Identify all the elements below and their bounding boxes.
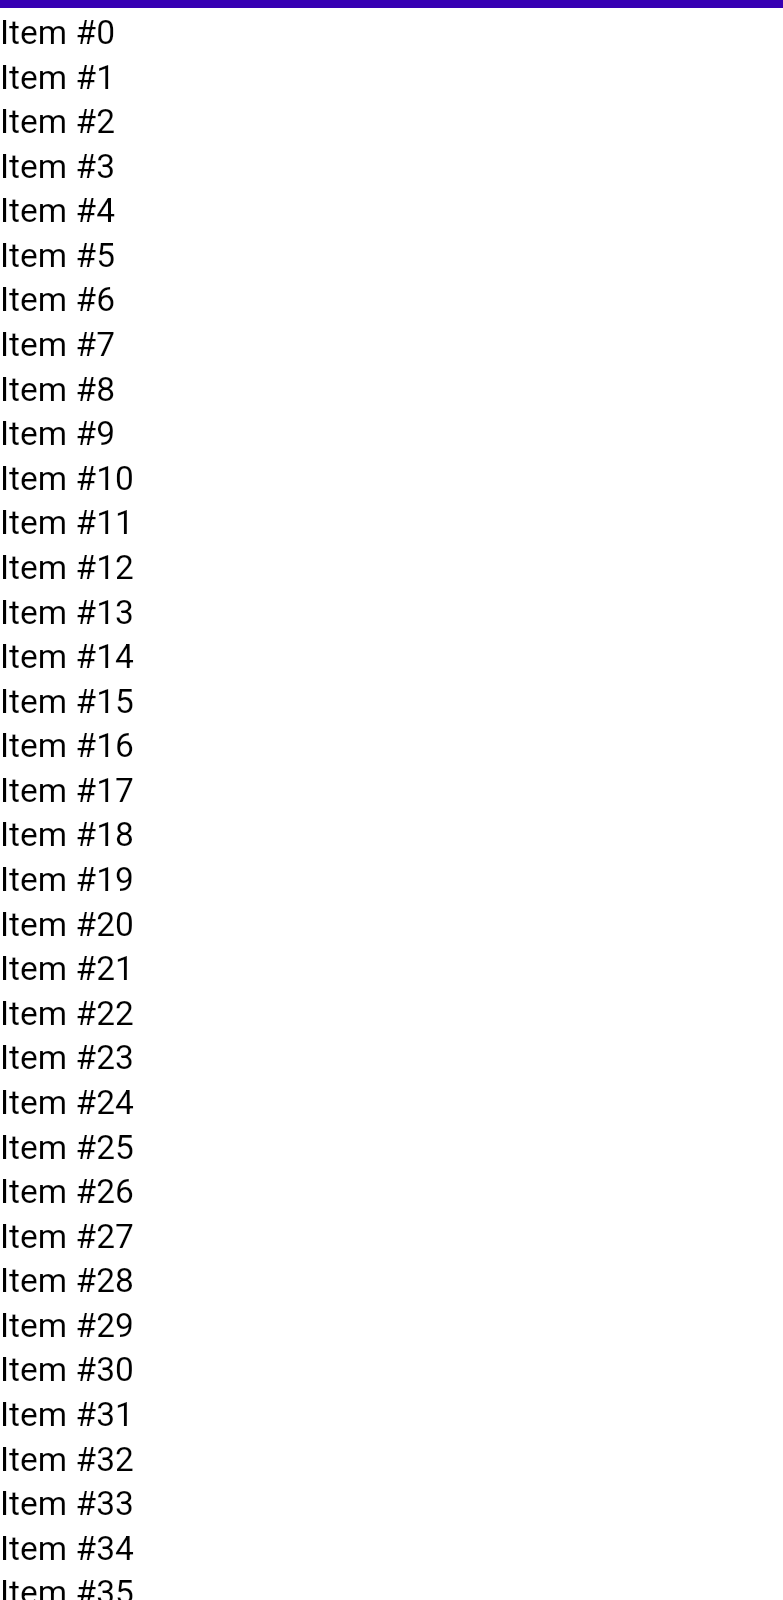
- staticText: Item #35: [0, 1573, 134, 1600]
- button[interactable]: Item #5: [0, 236, 783, 280]
- button[interactable]: Item #23: [0, 1038, 783, 1082]
- staticText: Item #9: [0, 414, 115, 453]
- button[interactable]: Item #21: [0, 949, 783, 993]
- button[interactable]: Item #6: [0, 280, 783, 324]
- staticText: Item #21: [0, 949, 134, 988]
- staticText: Item #4: [0, 191, 115, 230]
- button[interactable]: Item #11: [0, 503, 783, 547]
- button[interactable]: Item #35: [0, 1573, 783, 1600]
- button[interactable]: Item #24: [0, 1083, 783, 1127]
- staticText: Item #12: [0, 548, 134, 587]
- staticText: Item #19: [0, 860, 134, 899]
- staticText: Item #34: [0, 1529, 134, 1568]
- button[interactable]: Item #33: [0, 1484, 783, 1528]
- button[interactable]: Item #2: [0, 102, 783, 146]
- staticText: Item #33: [0, 1484, 134, 1523]
- staticText: Item #25: [0, 1128, 134, 1167]
- staticText: Item #23: [0, 1038, 134, 1077]
- staticText: Item #17: [0, 771, 134, 810]
- staticText: Item #22: [0, 994, 134, 1033]
- staticText: Item #18: [0, 815, 134, 854]
- staticText: Item #27: [0, 1217, 134, 1256]
- staticText: Item #15: [0, 682, 134, 721]
- staticText: Item #5: [0, 236, 115, 275]
- button[interactable]: Item #14: [0, 637, 783, 681]
- button[interactable]: Item #28: [0, 1261, 783, 1305]
- staticText: Item #26: [0, 1172, 134, 1211]
- button[interactable]: Item #22: [0, 994, 783, 1038]
- staticText: Item #10: [0, 459, 134, 498]
- button[interactable]: Item #3: [0, 147, 783, 191]
- button[interactable]: Item #1: [0, 58, 783, 102]
- button[interactable]: Item #34: [0, 1529, 783, 1573]
- staticText: Item #28: [0, 1261, 134, 1300]
- staticText: Item #16: [0, 726, 134, 765]
- button[interactable]: Item #7: [0, 325, 783, 369]
- button[interactable]: Item #9: [0, 414, 783, 458]
- button[interactable]: Item #15: [0, 682, 783, 726]
- staticText: Item #13: [0, 593, 134, 632]
- staticText: Item #32: [0, 1440, 134, 1479]
- staticText: Item #24: [0, 1083, 134, 1122]
- button[interactable]: Item #12: [0, 548, 783, 592]
- staticText: Item #30: [0, 1350, 134, 1389]
- button[interactable]: Item #13: [0, 593, 783, 637]
- staticText: Item #7: [0, 325, 115, 364]
- button[interactable]: Item #20: [0, 905, 783, 949]
- button[interactable]: Item #16: [0, 726, 783, 770]
- staticText: Item #0: [0, 13, 115, 52]
- button[interactable]: Item #0: [0, 13, 783, 57]
- staticText: Item #3: [0, 147, 115, 186]
- staticText: Item #14: [0, 637, 134, 676]
- button[interactable]: Item #8: [0, 370, 783, 414]
- button[interactable]: Item #30: [0, 1350, 783, 1394]
- button[interactable]: Item #25: [0, 1128, 783, 1172]
- staticText: Item #1: [0, 58, 115, 97]
- button[interactable]: Item #18: [0, 815, 783, 859]
- staticText: Item #8: [0, 370, 115, 409]
- button[interactable]: Item #26: [0, 1172, 783, 1216]
- staticText: Item #2: [0, 102, 115, 141]
- staticText: Item #20: [0, 905, 134, 944]
- button[interactable]: Item #17: [0, 771, 783, 815]
- button[interactable]: Item #4: [0, 191, 783, 235]
- button[interactable]: Item #19: [0, 860, 783, 904]
- staticText: Item #11: [0, 503, 134, 542]
- button[interactable]: Item #10: [0, 459, 783, 503]
- button[interactable]: Item #27: [0, 1217, 783, 1261]
- staticText: Item #6: [0, 280, 115, 319]
- button[interactable]: Item #32: [0, 1440, 783, 1484]
- staticText: Item #31: [0, 1395, 134, 1434]
- button[interactable]: Item #29: [0, 1306, 783, 1350]
- button[interactable]: Item #31: [0, 1395, 783, 1439]
- staticText: Item #29: [0, 1306, 134, 1345]
